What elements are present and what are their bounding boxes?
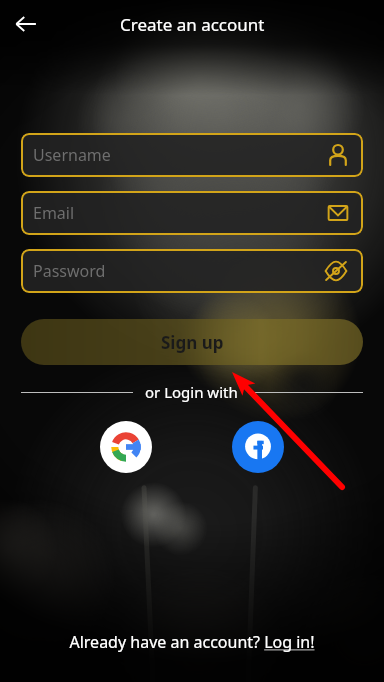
staticText: Create an account bbox=[120, 13, 265, 36]
button[interactable]: Email bbox=[21, 191, 363, 235]
staticText: Sign up bbox=[161, 331, 224, 354]
staticText: Email bbox=[33, 202, 75, 224]
button[interactable]: Sign in with Google bbox=[100, 421, 152, 473]
staticText: Already have an account? Log in! bbox=[69, 631, 315, 653]
button[interactable]: Sign up bbox=[21, 319, 363, 365]
staticText: Password bbox=[33, 260, 106, 282]
button[interactable]: Already have an account? Log in! bbox=[59, 628, 325, 656]
button[interactable]: Back bbox=[6, 4, 46, 44]
button[interactable]: Password bbox=[21, 249, 363, 293]
button[interactable]: Sign in with Facebook bbox=[232, 421, 284, 473]
staticText: Username bbox=[33, 144, 111, 166]
button[interactable]: Username bbox=[21, 133, 363, 177]
staticText: or Login with bbox=[145, 382, 238, 402]
button[interactable]: Show password bbox=[321, 256, 351, 286]
